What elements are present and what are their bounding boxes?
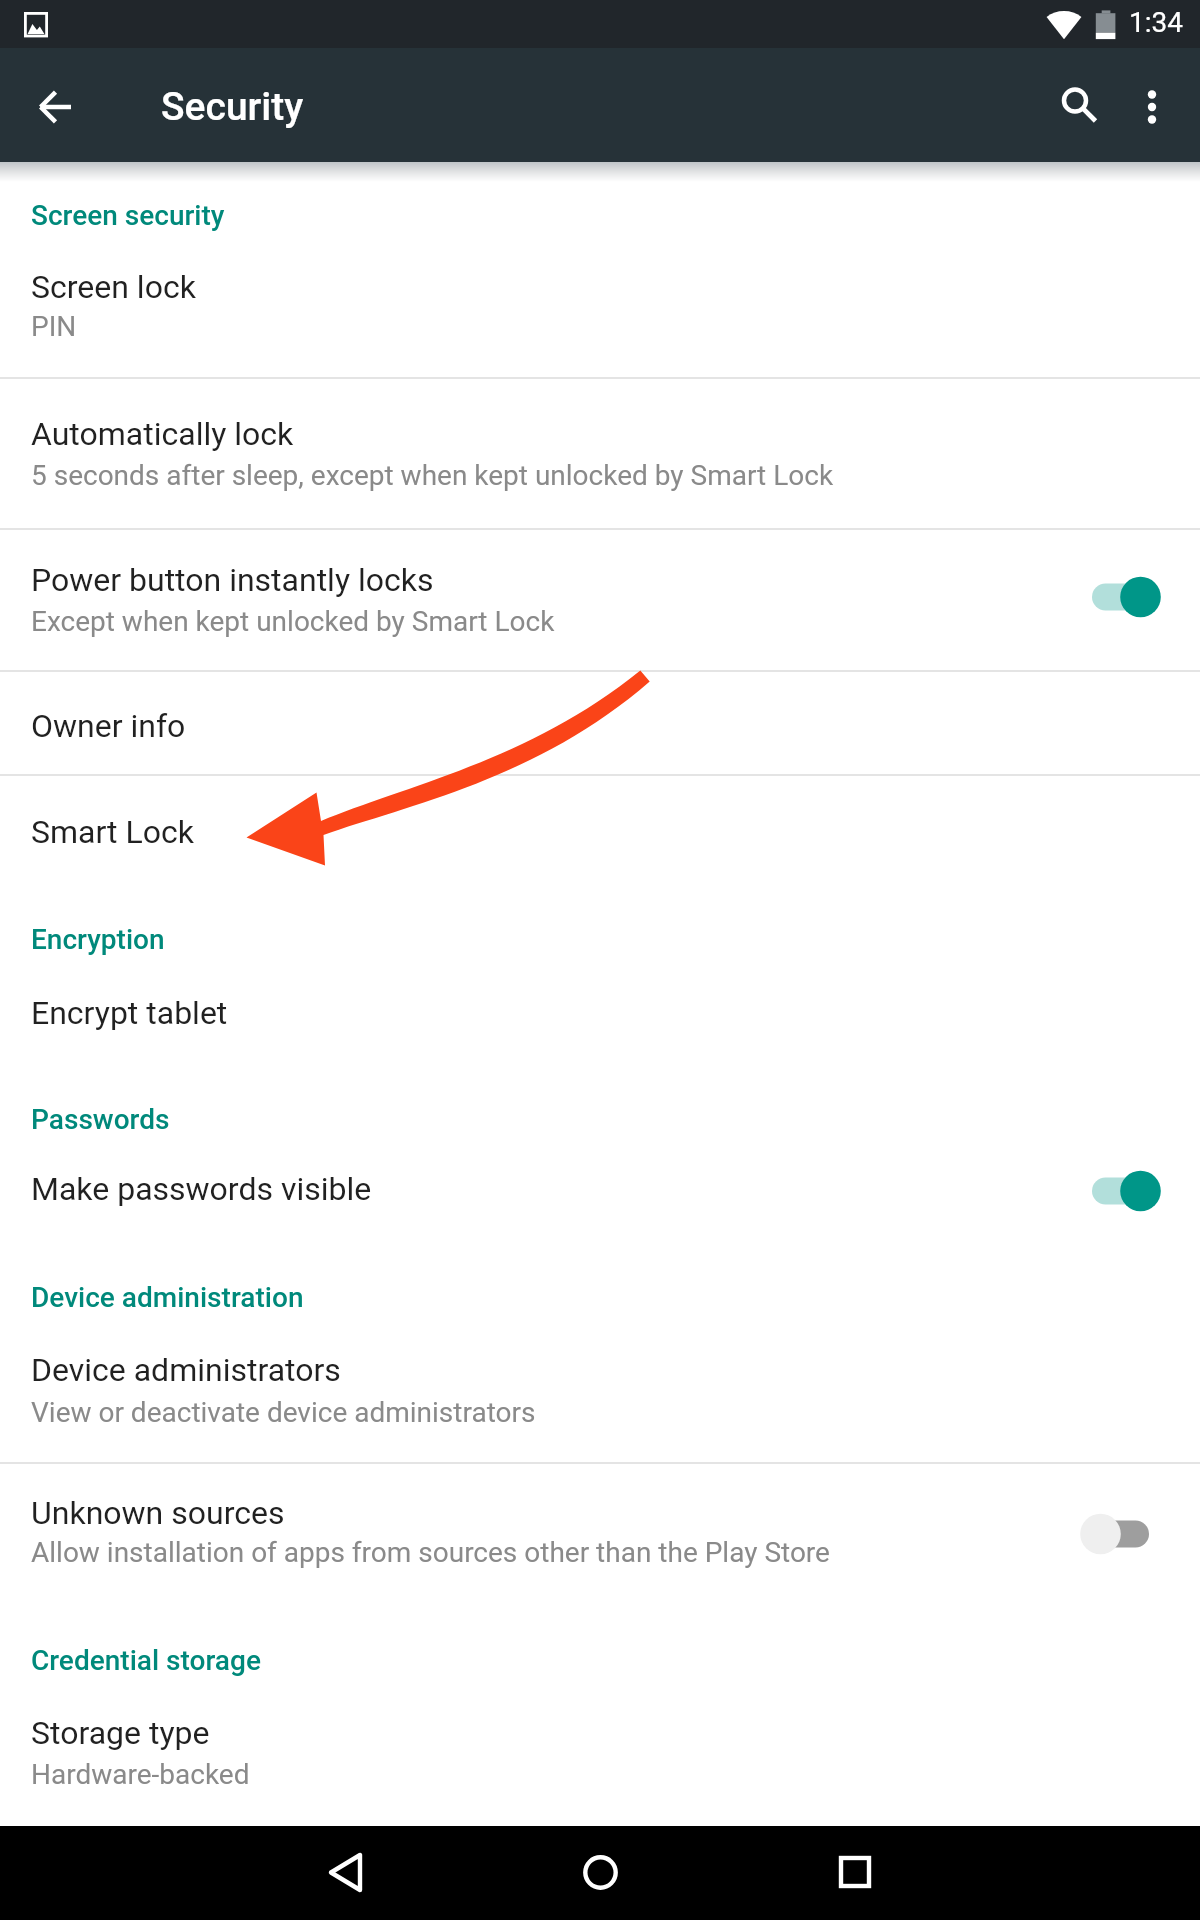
staticText: 1:34 [1129,6,1183,39]
button[interactable]: Storage type [0,1692,1200,1826]
button[interactable]: Back [300,1827,390,1917]
staticText: Make passwords visible [31,1170,372,1208]
staticText: Credential storage [31,1644,261,1677]
staticText: Owner info [31,707,186,745]
staticText: Smart Lock [31,813,194,851]
button[interactable]: More options [1107,62,1197,152]
staticText: Encrypt tablet [31,994,228,1032]
staticText: Security [161,84,304,130]
button[interactable]: Owner info [0,672,1200,774]
button[interactable]: Make passwords visible [0,1152,1200,1238]
staticText: Screen lock [31,268,196,306]
staticText: 5 seconds after sleep, except when kept … [31,459,834,492]
staticText: View or deactivate device administrators [31,1396,536,1429]
button[interactable]: Recent apps [810,1827,900,1917]
button[interactable]: Power button instantly locks [0,530,1200,670]
staticText: Screen security [31,199,225,232]
button[interactable]: Smart Lock [0,776,1200,882]
button[interactable]: Home [555,1827,645,1917]
staticText: Power button instantly locks [31,561,434,599]
staticText: Except when kept unlocked by Smart Lock [31,605,555,638]
staticText: Storage type [31,1714,210,1752]
button[interactable]: Search [1027,62,1117,152]
staticText: Passwords [31,1103,170,1136]
button[interactable]: Screen lock [0,246,1200,377]
button[interactable]: Automatically lock [0,379,1200,528]
staticText: Hardware-backed [31,1758,250,1791]
staticText: Device administration [31,1281,304,1314]
staticText: Allow installation of apps from sources … [31,1536,830,1569]
button[interactable]: Device administrators [0,1330,1200,1462]
staticText: Automatically lock [31,415,294,453]
button[interactable]: Unknown sources [0,1464,1200,1604]
staticText: Unknown sources [31,1494,285,1532]
button[interactable]: Navigate up [8,60,102,154]
staticText: PIN [31,310,77,343]
staticText: Encryption [31,923,165,956]
button[interactable]: Encrypt tablet [0,975,1200,1061]
staticText: Device administrators [31,1351,341,1389]
